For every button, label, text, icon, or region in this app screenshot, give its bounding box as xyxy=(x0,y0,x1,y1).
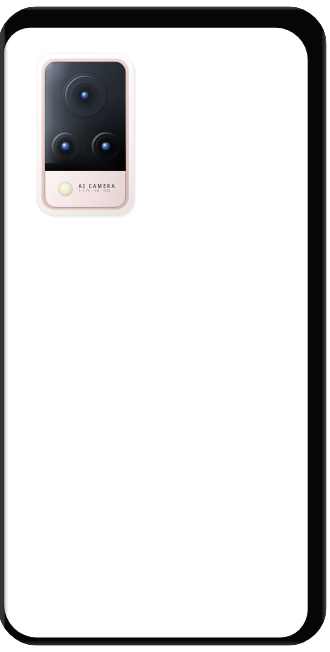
button[interactable]: Phone product photo xyxy=(0,0,330,652)
